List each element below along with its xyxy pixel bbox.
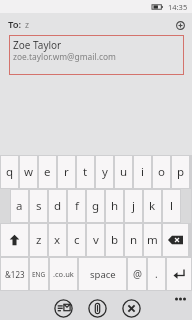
button[interactable]: Add recipient (173, 18, 187, 32)
staticText: zoe.taylor.wm@gmail.com (13, 51, 116, 62)
button[interactable]: .co.uk (50, 258, 77, 290)
staticText: z (25, 19, 29, 31)
staticText: u (120, 164, 128, 180)
button[interactable]: ENG (30, 258, 48, 290)
button[interactable]: o (153, 156, 170, 188)
staticText: &123 (5, 269, 25, 280)
staticText: c (74, 232, 80, 248)
button[interactable]: z (30, 224, 47, 256)
staticText: y (102, 164, 108, 180)
button[interactable]: x (49, 224, 66, 256)
button[interactable]: a (11, 190, 28, 222)
button[interactable]: d (49, 190, 66, 222)
button[interactable]: g (87, 190, 104, 222)
staticText: To: (8, 18, 22, 31)
staticText: l (170, 198, 173, 214)
button[interactable]: h (106, 190, 123, 222)
button[interactable]: Zoe Taylor (9, 35, 184, 75)
staticText: h (111, 198, 119, 214)
button[interactable]: u (115, 156, 132, 188)
staticText: Zoe Taylor (13, 38, 62, 52)
staticText: r (64, 164, 69, 180)
staticText: v (93, 232, 99, 248)
button[interactable]: Shift (1, 224, 28, 256)
staticText: i (141, 164, 144, 180)
staticText: x (54, 232, 61, 248)
staticText: o (158, 164, 165, 180)
button[interactable]: m (144, 224, 161, 256)
staticText: @ (133, 267, 142, 281)
staticText: e (44, 164, 51, 180)
staticText: g (92, 198, 100, 214)
button[interactable]: r (58, 156, 75, 188)
button[interactable]: More options (172, 293, 192, 305)
staticText: w (24, 164, 34, 180)
button[interactable]: Enter (167, 258, 191, 290)
button[interactable]: q (1, 156, 18, 188)
button[interactable]: k (144, 190, 161, 222)
staticText: . (155, 267, 158, 281)
staticText: j (132, 198, 135, 214)
staticText: s (36, 198, 42, 214)
button[interactable]: f (68, 190, 85, 222)
button[interactable]: Close (122, 299, 141, 318)
staticText: .co.uk (53, 269, 74, 279)
staticText: k (149, 198, 156, 214)
staticText: p (177, 164, 185, 180)
button[interactable]: &123 (1, 258, 28, 290)
button[interactable]: i (134, 156, 151, 188)
staticText: b (111, 232, 119, 248)
button[interactable]: Attach (88, 299, 107, 318)
staticText: d (54, 198, 62, 214)
staticText: q (6, 164, 14, 180)
button[interactable]: l (163, 190, 180, 222)
button[interactable]: s (30, 190, 47, 222)
staticText: a (16, 198, 23, 214)
staticText: space (90, 268, 116, 281)
button[interactable]: y (96, 156, 113, 188)
staticText: f (75, 198, 79, 214)
staticText: n (130, 232, 138, 248)
button[interactable]: n (125, 224, 142, 256)
button[interactable]: @ (128, 258, 146, 290)
button[interactable]: c (68, 224, 85, 256)
staticText: 14:35 (168, 2, 188, 12)
button[interactable]: v (87, 224, 104, 256)
button[interactable]: w (20, 156, 37, 188)
button[interactable]: b (106, 224, 123, 256)
button[interactable]: p (172, 156, 189, 188)
button[interactable]: t (77, 156, 94, 188)
button[interactable]: . (148, 258, 165, 290)
button[interactable]: j (125, 190, 142, 222)
button[interactable]: Backspace (163, 224, 188, 256)
staticText: z (36, 232, 42, 248)
staticText: m (147, 232, 158, 248)
button[interactable]: e (39, 156, 56, 188)
button[interactable]: space (79, 258, 126, 290)
staticText: ENG (32, 270, 46, 279)
button[interactable]: Send (54, 299, 73, 318)
staticText: t (83, 164, 88, 180)
